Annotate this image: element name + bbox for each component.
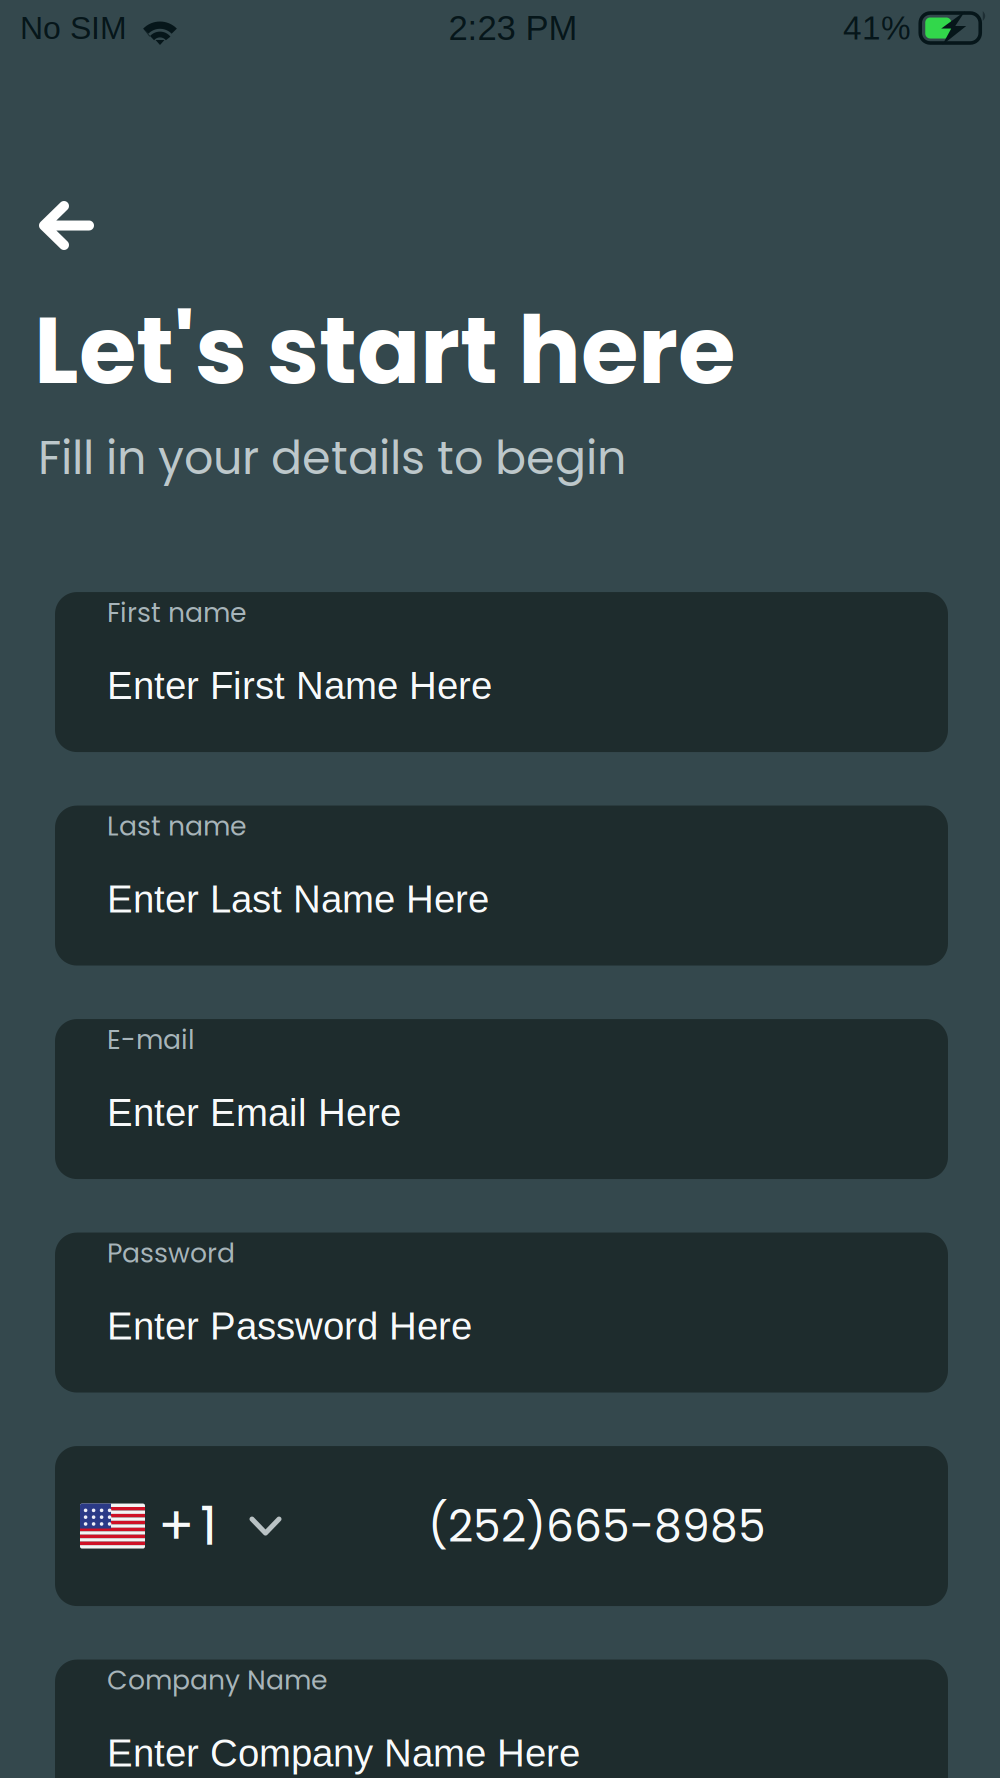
staticText: 2:23 PM	[448, 9, 577, 47]
button[interactable]: E-mail	[55, 1019, 948, 1179]
staticText: Let's start here	[34, 285, 735, 416]
staticText: First name	[107, 594, 247, 631]
staticText: No SIM	[20, 10, 127, 46]
staticText: Company Name	[107, 1662, 328, 1699]
staticText: Enter First Name Here	[107, 664, 492, 707]
button[interactable]: Password	[55, 1233, 948, 1393]
button[interactable]: Company Name	[55, 1660, 948, 1778]
button[interactable]: First name	[55, 592, 948, 752]
staticText: Enter Last Name Here	[107, 878, 489, 921]
button[interactable]: Last name	[55, 806, 948, 966]
staticText: (252)665-8985	[428, 1495, 766, 1557]
staticText: Enter Company Name Here	[107, 1732, 580, 1775]
staticText: Enter Password Here	[107, 1305, 472, 1348]
staticText: 1	[200, 1489, 217, 1563]
button[interactable]: Back	[0, 196, 119, 255]
staticText: Password	[107, 1235, 235, 1272]
staticText: +	[158, 1489, 194, 1563]
staticText: Last name	[107, 808, 247, 845]
staticText: 41%	[843, 9, 911, 47]
staticText: Enter Email Here	[107, 1091, 401, 1134]
staticText: E-mail	[107, 1021, 195, 1058]
staticText: Fill in your details to begin	[38, 426, 626, 490]
button[interactable]: +	[55, 1446, 948, 1606]
